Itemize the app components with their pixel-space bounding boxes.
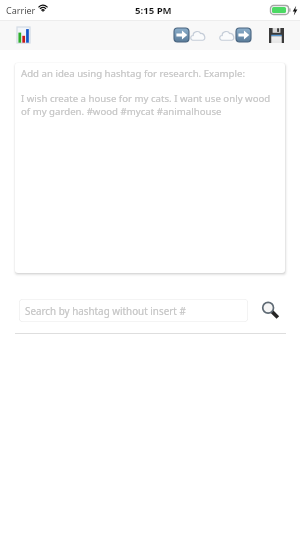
- staticText: Carrier: [6, 4, 36, 16]
- button[interactable]: Download from cloud: [217, 22, 253, 48]
- button[interactable]: Upload to cloud: [172, 22, 208, 48]
- button[interactable]: Search: [261, 301, 281, 321]
- staticText: 5:15 PM: [135, 4, 172, 17]
- staticText: I wish create a house for my cats. I wan…: [21, 92, 279, 118]
- button[interactable]: Save: [266, 24, 286, 46]
- staticText: Search by hashtag without insert #: [25, 304, 186, 317]
- button[interactable]: Add an idea using hashtag for research. …: [15, 63, 285, 273]
- button[interactable]: Statistics: [14, 24, 33, 46]
- button[interactable]: Search by hashtag without insert #: [19, 299, 248, 322]
- staticText: Add an idea using hashtag for research. …: [21, 67, 246, 80]
